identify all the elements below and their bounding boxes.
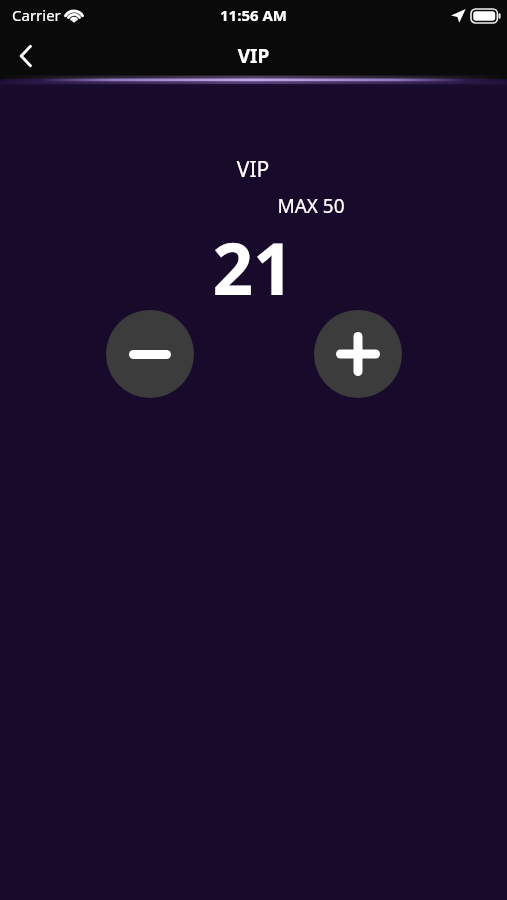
staticText: 11:56 AM <box>203 5 304 27</box>
button[interactable]: Increase <box>314 310 402 398</box>
staticText: 21 <box>153 219 353 303</box>
staticText: MAX 50 <box>251 193 371 219</box>
staticText: Carrier <box>12 5 61 25</box>
staticText: VIP <box>213 155 293 183</box>
staticText: VIP <box>203 43 304 69</box>
button[interactable]: Back <box>4 34 48 78</box>
button[interactable]: Decrease <box>106 310 194 398</box>
